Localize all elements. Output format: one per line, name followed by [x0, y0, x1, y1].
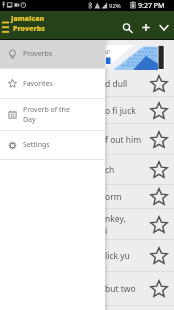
- button[interactable]: Add to favorites: [150, 188, 168, 206]
- button[interactable]: lick yu: [0, 240, 174, 272]
- button[interactable]: ld?: [0, 45, 165, 70]
- staticText: o fi juck: [105, 105, 136, 117]
- staticText: Proverbs: [13, 24, 45, 34]
- button[interactable]: Add to favorites: [150, 247, 168, 265]
- button[interactable]: f out him: [0, 124, 174, 155]
- button[interactable]: Add to favorites: [150, 131, 168, 149]
- button[interactable]: Search: [120, 21, 136, 37]
- staticText: i: [105, 225, 108, 237]
- button[interactable]: Add: [138, 21, 154, 37]
- button[interactable]: nkey,: [0, 209, 174, 240]
- staticText: 9:27 PM: [138, 1, 165, 11]
- staticText: but two: [105, 283, 136, 295]
- button[interactable]: Add to favorites: [150, 161, 168, 179]
- staticText: ld?: [104, 49, 111, 56]
- button[interactable]: Proverb of the: [0, 99, 105, 130]
- staticText: orm: [105, 191, 122, 203]
- staticText: Day: [23, 115, 36, 125]
- button[interactable]: o fi juck: [0, 97, 174, 124]
- button[interactable]: More options: [156, 21, 172, 37]
- staticText: Settings: [23, 140, 50, 150]
- staticText: Proverbs: [23, 49, 53, 59]
- button[interactable]: Add to favorites: [150, 102, 168, 120]
- button[interactable]: Open navigation drawer: [1, 21, 10, 33]
- button[interactable]: but two: [0, 272, 174, 306]
- button[interactable]: d dull: [0, 70, 174, 97]
- button[interactable]: Proverbs: [0, 40, 105, 68]
- button[interactable]: Settings: [0, 131, 105, 159]
- button[interactable]: ch: [0, 155, 174, 185]
- staticText: 92%: [109, 2, 121, 10]
- staticText: lick yu: [105, 250, 130, 262]
- staticText: f out him: [105, 134, 142, 146]
- staticText: ch: [105, 164, 115, 176]
- staticText: Jamaican: [11, 14, 45, 24]
- button[interactable]: Add to favorites: [150, 280, 168, 298]
- button[interactable]: Add to favorites: [150, 216, 168, 234]
- staticText: d dull: [105, 78, 128, 90]
- button[interactable]: Add to favorites: [150, 75, 168, 93]
- button[interactable]: Favorites: [0, 69, 105, 98]
- button[interactable]: orm: [0, 185, 174, 209]
- staticText: Proverb of the: [23, 105, 70, 115]
- staticText: Favorites: [23, 79, 53, 89]
- staticText: nkey,: [105, 213, 126, 225]
